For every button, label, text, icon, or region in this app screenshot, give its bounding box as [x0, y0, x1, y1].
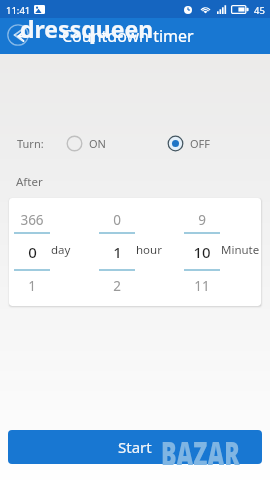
button[interactable]: 9 — [184, 198, 261, 306]
staticText: ON — [89, 136, 106, 151]
staticText: 1 — [113, 242, 122, 258]
button[interactable]: 0 — [99, 198, 179, 306]
staticText: dressqueen — [20, 13, 154, 44]
staticText: 10 — [193, 242, 211, 258]
staticText: 1 — [28, 277, 36, 291]
staticText: 45 — [254, 4, 265, 17]
staticText: 11 — [194, 277, 210, 291]
staticText: Turn: — [17, 136, 44, 151]
staticText: 2 — [113, 277, 121, 291]
staticText: Start — [118, 437, 152, 457]
staticText: Countdown timer — [62, 25, 194, 47]
staticText: OFF — [190, 136, 211, 151]
staticText: After — [16, 174, 43, 190]
button[interactable]: Start — [8, 430, 262, 464]
staticText: hour — [136, 242, 162, 258]
staticText: 11:41 — [6, 4, 31, 17]
staticText: Minute — [221, 242, 260, 258]
staticText: day — [51, 242, 71, 258]
staticText: BAZAR — [161, 431, 240, 465]
button[interactable]: Back — [8, 21, 38, 51]
button[interactable]: OFF — [167, 135, 211, 152]
button[interactable]: 366 — [14, 198, 94, 306]
staticText: 0 — [113, 211, 121, 225]
staticText: 366 — [20, 211, 44, 225]
button[interactable]: ON — [66, 135, 106, 152]
staticText: 0 — [28, 242, 37, 258]
staticText: 9 — [198, 211, 206, 225]
